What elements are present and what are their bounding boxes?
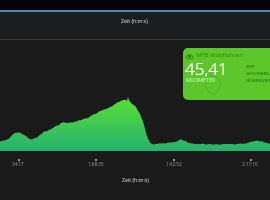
staticText: 1:42:52	[166, 161, 182, 167]
staticText: HÖHENUNT.	[246, 78, 270, 84]
staticText: 2:17:10	[242, 161, 258, 167]
staticText: 34:17	[12, 161, 24, 167]
button[interactable]: Bike	[183, 48, 270, 100]
staticText: Zeit (h:m:s)	[121, 17, 148, 24]
staticText: 1:08:35	[88, 161, 104, 167]
staticText: Zeit (h:m:s)	[122, 176, 149, 183]
staticText: GESCHWIN.	[246, 71, 270, 77]
staticText: ZEIT	[246, 64, 255, 70]
staticText: 45,41	[185, 57, 228, 80]
other: Bike	[186, 52, 193, 59]
staticText: KILOMETER	[186, 76, 216, 83]
staticText: MTB Waldfahren	[196, 51, 243, 59]
button[interactable]: Zeit (h:m:s)	[0, 12, 270, 39]
